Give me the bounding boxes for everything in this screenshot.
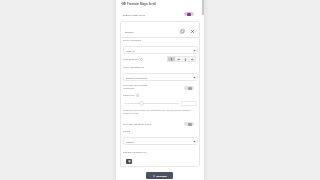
staticText: Select Animation — [123, 39, 142, 42]
button[interactable]: Element Container — [123, 73, 198, 81]
staticText: Premium Magic Scroll — [127, 2, 156, 6]
button[interactable]: Duplicate — [180, 29, 185, 34]
staticText: Sync with the whole scene — [123, 123, 152, 126]
staticText: Sync with the Previous — [123, 84, 148, 87]
button[interactable]: Toggle — [184, 86, 194, 90]
button[interactable]: Toggle — [184, 12, 194, 16]
staticText: Default — [126, 140, 135, 143]
button[interactable]: Info — [140, 58, 143, 61]
button[interactable]: Left — [189, 56, 196, 62]
button[interactable]: Add Item — [146, 172, 173, 179]
staticText: Disable Animation On — [123, 151, 147, 154]
staticText: Fade In — [126, 49, 135, 52]
staticText: Animation — [123, 87, 135, 90]
staticText: Element Container — [126, 76, 148, 79]
button[interactable]: Down — [182, 56, 189, 62]
button[interactable]: Right — [175, 56, 182, 62]
staticText: Fade Direction — [123, 58, 139, 61]
button[interactable]: Delay value — [181, 101, 197, 106]
button[interactable]: Desktop — [126, 159, 132, 164]
button[interactable]: Default — [123, 137, 198, 145]
staticText: Negative values means this animation wil… — [123, 109, 198, 115]
staticText: Easing — [123, 130, 131, 133]
button[interactable]: Info — [136, 94, 139, 97]
button[interactable]: Toggle — [184, 122, 194, 126]
button[interactable]: Fade In — [123, 46, 198, 54]
staticText: Add Item — [156, 174, 167, 177]
staticText: Enable Magic Scroll — [123, 13, 146, 16]
staticText: Section — [125, 30, 134, 33]
staticText: Delay (sec) — [123, 94, 135, 97]
staticText: Apply Animation To — [123, 66, 144, 69]
button[interactable]: Delay slider — [124, 101, 179, 106]
button[interactable]: Back — [121, 1, 124, 6]
button[interactable]: Remove — [191, 30, 194, 33]
button[interactable]: Up — [167, 56, 175, 62]
